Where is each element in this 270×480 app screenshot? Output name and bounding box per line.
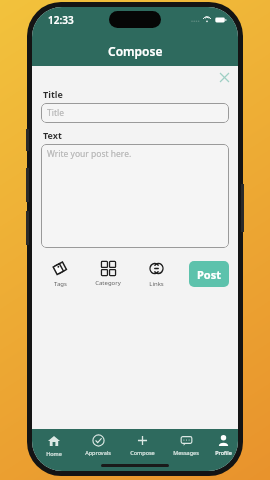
staticText: 12:33 <box>48 13 74 27</box>
staticText: Write your post here. <box>47 148 132 160</box>
button[interactable]: Approvals <box>76 433 120 457</box>
staticText: Compose <box>108 43 163 59</box>
button[interactable]: Post <box>189 261 229 287</box>
button[interactable]: Messages <box>164 433 208 457</box>
staticText: Title <box>47 107 64 119</box>
staticText: Post <box>197 267 222 282</box>
staticText: Title <box>43 88 63 100</box>
button[interactable]: Home <box>32 433 76 458</box>
button[interactable]: Close <box>216 69 232 85</box>
button[interactable]: Compose <box>120 433 164 457</box>
button[interactable]: Write your post here. <box>41 144 229 248</box>
button[interactable]: Links <box>137 258 175 290</box>
staticText: Category <box>95 279 121 287</box>
button[interactable]: Profile <box>208 433 238 457</box>
staticText: Messages <box>173 449 199 456</box>
staticText: Profile <box>215 449 232 456</box>
staticText: Text <box>43 129 62 141</box>
button[interactable]: Title <box>41 103 229 123</box>
staticText: Links <box>149 280 164 288</box>
staticText: Home <box>46 450 62 457</box>
staticText: Approvals <box>85 449 111 456</box>
button[interactable]: Tags <box>41 258 79 290</box>
staticText: Tags <box>54 280 67 288</box>
button[interactable]: Category <box>87 259 129 289</box>
staticText: Compose <box>130 449 155 456</box>
